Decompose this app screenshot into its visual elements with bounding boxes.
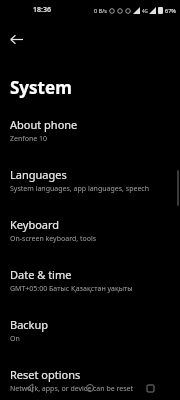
staticText: System xyxy=(10,76,72,99)
button[interactable]: Reset options xyxy=(0,362,180,399)
staticText: 18:36 xyxy=(33,5,51,15)
button[interactable]: Back xyxy=(0,376,60,400)
staticText: System languages, app languages, speech xyxy=(10,184,150,194)
staticText: Reset options xyxy=(10,367,81,382)
button[interactable]: Date & time xyxy=(0,262,180,299)
button[interactable]: Keyboard xyxy=(0,212,180,249)
button[interactable]: Back xyxy=(4,27,28,51)
staticText: Network, apps, or device can be reset xyxy=(10,384,134,394)
button[interactable]: Languages xyxy=(0,162,180,199)
button[interactable]: About phone xyxy=(0,112,180,149)
button[interactable]: Home xyxy=(60,376,120,400)
staticText: GMT+05:00 Батыс Қазақстан уақыты xyxy=(10,284,133,294)
staticText: 67% xyxy=(165,7,176,14)
staticText: Zenfone 10 xyxy=(10,134,48,144)
button[interactable]: Backup xyxy=(0,312,180,349)
staticText: About phone xyxy=(10,117,78,132)
staticText: Date & time xyxy=(10,267,72,282)
staticText: Keyboard xyxy=(10,217,60,232)
staticText: Backup xyxy=(10,317,49,332)
staticText: On-screen keyboard, tools xyxy=(10,234,97,244)
staticText: On xyxy=(10,334,20,344)
staticText: 4G xyxy=(142,8,148,14)
staticText: 0 B/s xyxy=(94,7,107,14)
staticText: Languages xyxy=(10,167,67,182)
button[interactable]: Recent apps xyxy=(120,376,180,400)
